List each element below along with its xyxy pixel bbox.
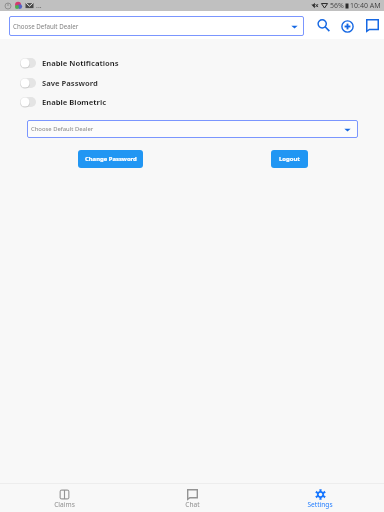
staticText: 56% [330,1,344,11]
button[interactable]: Search [312,14,334,36]
button[interactable]: Add [336,15,358,37]
button[interactable]: Choose Default Dealer [9,16,304,36]
button[interactable]: Claims [0,487,128,509]
staticText: Choose Default Dealer [13,22,79,30]
staticText: Enable Biometric [42,97,107,107]
button[interactable]: Enable Notifications [0,55,384,71]
button[interactable]: Chat [128,487,256,509]
staticText: Chat [185,500,200,509]
staticText: Enable Notifications [42,58,119,68]
button[interactable]: Chat [361,14,383,36]
button[interactable]: Save Password [0,75,384,91]
staticText: Choose Default Dealer [31,125,94,133]
button[interactable]: Change Password [78,150,143,168]
staticText: Settings [307,500,333,509]
staticText: Logout [279,155,300,163]
staticText: ... [36,1,42,11]
button[interactable]: Enable Biometric [0,94,384,110]
button[interactable]: Logout [271,150,308,168]
staticText: 10:40 AM [350,1,381,11]
button[interactable]: Settings [256,487,384,509]
button[interactable]: Choose Default Dealer [27,120,358,138]
staticText: Save Password [42,78,98,88]
staticText: Change Password [85,155,137,163]
staticText: Claims [54,500,75,509]
